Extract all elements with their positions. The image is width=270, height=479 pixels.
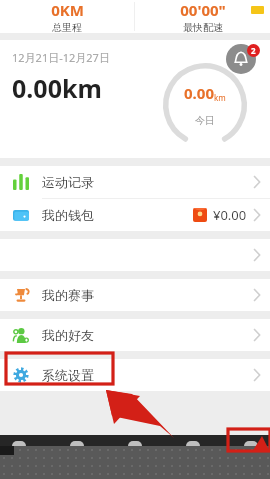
staticText: 今日 [195,114,215,127]
staticText: 0KM [51,0,84,20]
button[interactable]: 我的赛事 [0,279,270,311]
staticText: km [214,92,226,103]
staticText: 运动记录 [42,174,94,190]
staticText: ¥0.00 [213,206,247,224]
button[interactable]: Tab 3 [128,441,142,446]
staticText: 00'00" [180,0,226,20]
button[interactable]: Tab 2 [70,441,84,446]
button[interactable]: 我的钱包 [0,199,270,231]
button[interactable]: Tab 4 [186,441,200,446]
staticText: 我的赛事 [42,287,94,303]
button[interactable]: Tab 5 [244,441,258,446]
button[interactable]: Tab 1 [12,441,26,446]
button[interactable]: Notifications [226,44,256,74]
staticText: 12月21日-12月27日 [12,50,110,65]
button[interactable]: 我的好友 [0,319,270,351]
staticText: 我的钱包 [42,207,94,223]
staticText: 总里程 [52,21,82,33]
staticText: 我的好友 [42,327,94,343]
button[interactable]: 运动记录 [0,166,270,198]
staticText: 2 [251,45,256,56]
staticText: 0.00 [184,83,214,103]
staticText: 系统设置 [42,367,94,383]
staticText: 0.00km [12,71,102,105]
staticText: 最快配速 [183,21,223,33]
button[interactable]: 系统设置 [0,359,270,391]
